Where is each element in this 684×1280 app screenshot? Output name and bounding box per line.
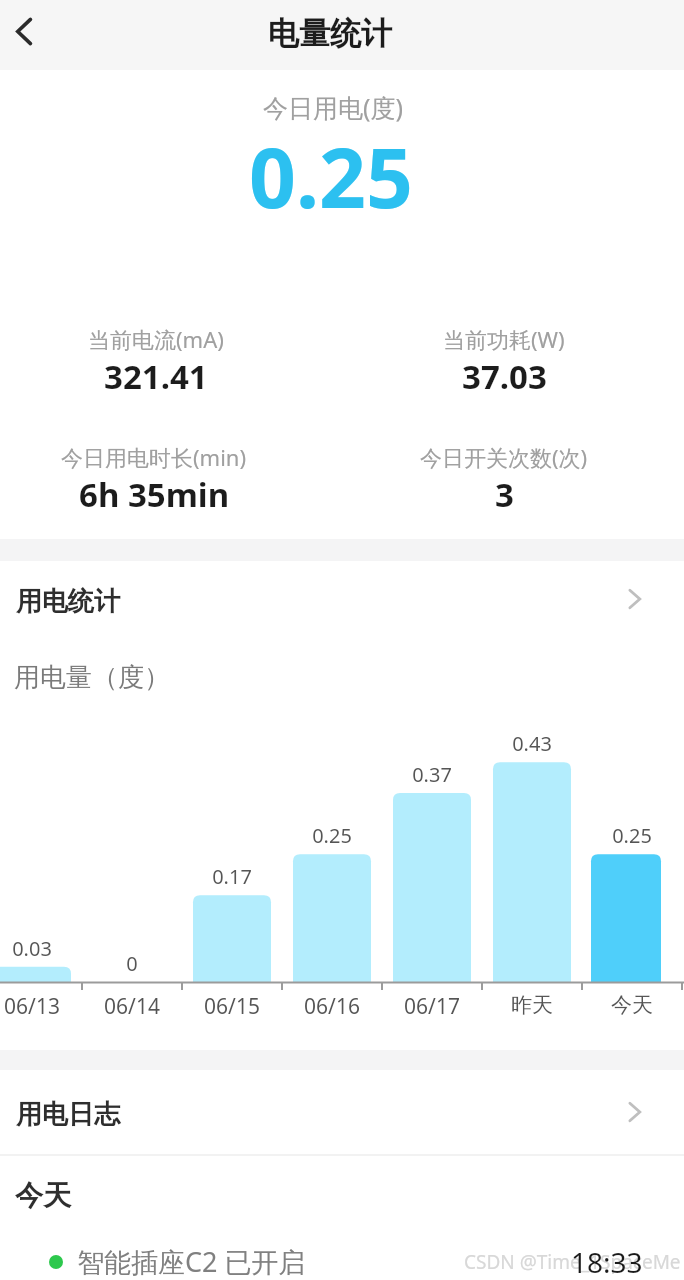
staticText: 06/17 <box>382 992 482 1021</box>
staticText: 当前电流(mA) <box>88 324 224 354</box>
staticText: 06/16 <box>282 992 382 1021</box>
staticText: 06/14 <box>82 992 182 1021</box>
staticText: 智能插座C2 已开启 <box>77 1243 306 1280</box>
staticText: 0.25 <box>582 822 682 849</box>
button[interactable]: 用电日志 <box>0 1065 684 1164</box>
staticText: 0.25 <box>0 120 673 232</box>
staticText: 电量统计 <box>268 14 392 53</box>
staticText: 0.43 <box>482 730 582 757</box>
staticText: 321.41 <box>104 354 208 399</box>
staticText: 6h 35min <box>79 472 230 517</box>
staticText: 06/13 <box>0 992 82 1021</box>
staticText: 当前功耗(W) <box>443 324 565 354</box>
staticText: 今日用电(度) <box>0 90 675 124</box>
staticText: 3 <box>495 472 514 517</box>
button[interactable]: Back <box>2 8 48 54</box>
staticText: 18:33 <box>571 1243 643 1280</box>
staticText: 今日开关次数(次) <box>420 442 588 472</box>
button[interactable]: 智能插座C2 已开启 <box>0 1236 684 1280</box>
staticText: 今日用电时长(min) <box>61 442 247 472</box>
staticText: 用电统计 <box>16 585 120 618</box>
staticText: 用电日志 <box>16 1098 120 1131</box>
staticText: 0.25 <box>282 822 382 849</box>
staticText: 0.03 <box>0 935 82 962</box>
staticText: 0.17 <box>182 863 282 890</box>
staticText: 0.37 <box>382 761 482 788</box>
staticText: 今天 <box>15 1178 71 1213</box>
staticText: CSDN @Time_1SpaceMe <box>464 1249 681 1275</box>
button[interactable]: 用电统计 <box>0 559 684 644</box>
staticText: 06/15 <box>182 992 282 1021</box>
staticText: 37.03 <box>462 354 547 399</box>
staticText: 昨天 <box>482 992 582 1018</box>
staticText: 今天 <box>582 992 682 1018</box>
staticText: 0 <box>82 950 182 977</box>
staticText: 用电量（度） <box>14 661 170 694</box>
